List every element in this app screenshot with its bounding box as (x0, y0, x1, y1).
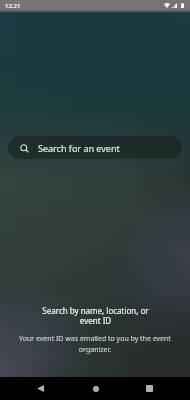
button[interactable]: Back (29, 377, 52, 400)
staticText: Search for an event (38, 142, 120, 154)
staticText: 12:21 (5, 2, 21, 10)
button[interactable]: Home (84, 377, 107, 400)
button[interactable]: Recents (138, 377, 161, 400)
button[interactable]: Search for an event (8, 136, 182, 159)
staticText: Your event ID was emailed to you by the … (19, 334, 171, 354)
staticText: Search by name, location, or event ID (42, 305, 149, 326)
